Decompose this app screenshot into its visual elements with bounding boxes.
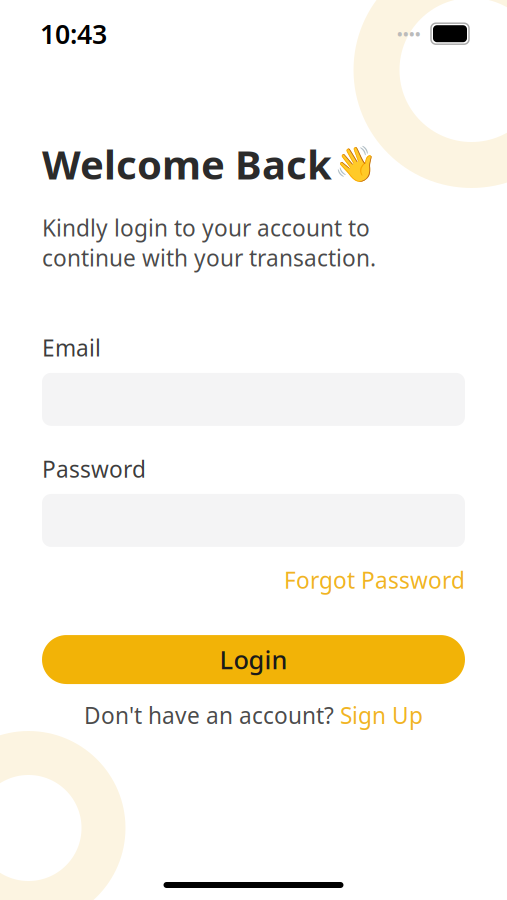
staticText: Sign Up	[340, 700, 423, 730]
staticText: Email	[42, 333, 101, 363]
staticText: 👋	[334, 144, 377, 184]
staticText: 10:43	[40, 16, 107, 51]
staticText: Password	[42, 454, 146, 484]
staticText: Welcome Back	[42, 137, 332, 190]
button[interactable]: Forgot Password	[284, 565, 465, 595]
staticText: Kindly login to your account to continue…	[42, 212, 376, 273]
button[interactable]: Email field	[0, 373, 507, 426]
button[interactable]: Login	[42, 635, 465, 684]
staticText: ••••	[397, 24, 421, 43]
button[interactable]: Password field	[0, 494, 507, 547]
button[interactable]: Sign Up	[340, 700, 423, 730]
staticText: Forgot Password	[284, 565, 465, 595]
staticText: Login	[219, 643, 287, 676]
staticText: Don't have an account?	[84, 700, 340, 730]
